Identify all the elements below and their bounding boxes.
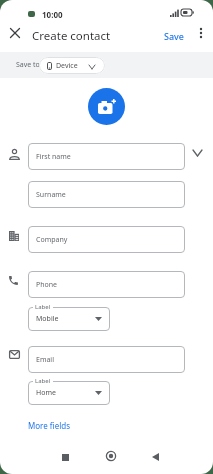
staticText: Company bbox=[36, 235, 68, 245]
button[interactable]: Surname bbox=[28, 181, 185, 208]
button[interactable] bbox=[59, 451, 71, 463]
staticText: Phone bbox=[36, 280, 58, 290]
button[interactable] bbox=[193, 150, 202, 156]
button[interactable] bbox=[6, 24, 24, 42]
button[interactable] bbox=[194, 24, 208, 42]
staticText: Save to bbox=[16, 60, 40, 70]
staticText: Email bbox=[36, 355, 54, 365]
button[interactable] bbox=[149, 451, 161, 463]
button[interactable]: Device bbox=[39, 57, 105, 74]
button[interactable] bbox=[88, 88, 125, 125]
button[interactable]: Save bbox=[160, 26, 189, 46]
staticText: Surname bbox=[36, 190, 66, 200]
button[interactable]: First name bbox=[28, 143, 185, 170]
button[interactable]: Email bbox=[28, 346, 185, 373]
staticText: Label bbox=[35, 377, 51, 385]
staticText: Device bbox=[56, 61, 78, 71]
staticText: Create contact bbox=[32, 28, 111, 44]
button[interactable]: More fields bbox=[22, 414, 76, 437]
button[interactable]: Phone bbox=[28, 271, 185, 298]
staticText: Home bbox=[36, 388, 56, 398]
staticText: Label bbox=[35, 303, 51, 311]
button[interactable]: Mobile bbox=[28, 307, 110, 331]
staticText: 10:00 bbox=[42, 9, 63, 20]
button[interactable] bbox=[104, 449, 118, 463]
button[interactable]: Home bbox=[28, 381, 110, 405]
button[interactable]: Company bbox=[28, 226, 185, 253]
staticText: Mobile bbox=[36, 314, 59, 324]
staticText: First name bbox=[36, 152, 71, 162]
